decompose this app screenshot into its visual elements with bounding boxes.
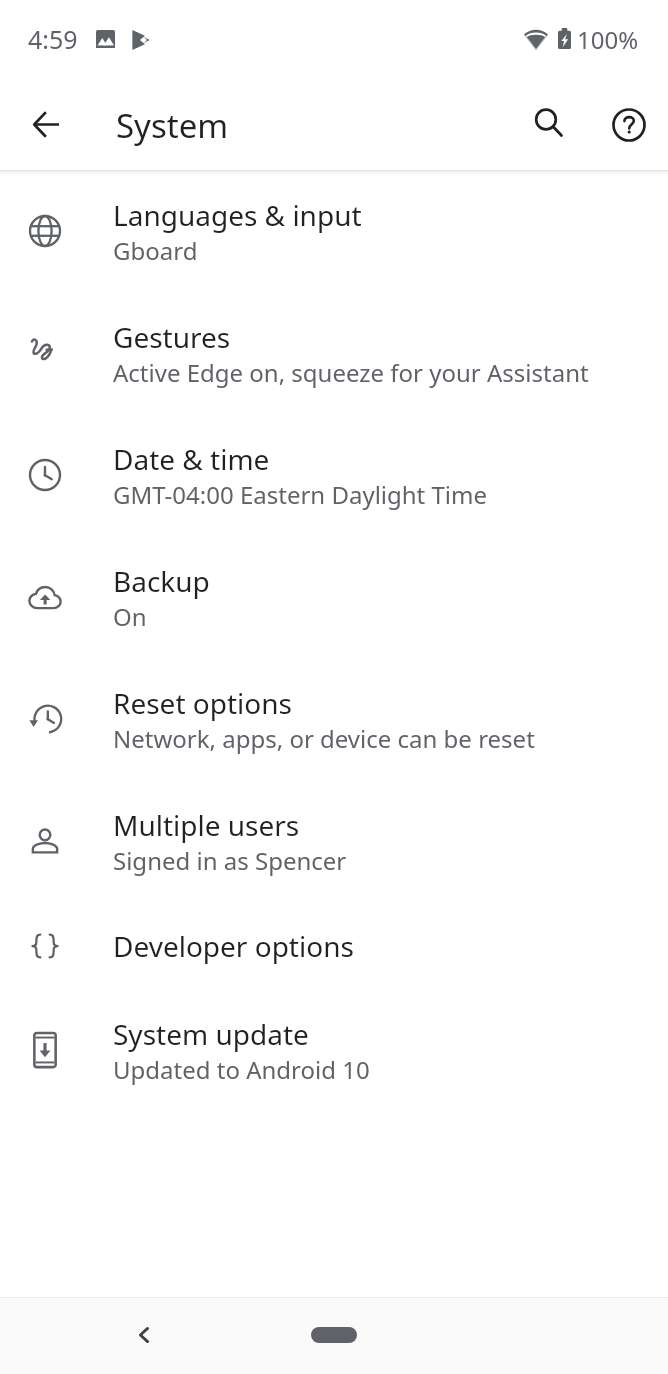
- staticText: 4:59: [28, 22, 78, 56]
- staticText: Date & time: [113, 440, 270, 478]
- staticText: System: [116, 103, 229, 148]
- button[interactable]: Back: [21, 100, 70, 149]
- staticText: 100%: [577, 23, 639, 56]
- staticText: Developer options: [113, 927, 354, 965]
- button[interactable]: Developer options: [0, 902, 668, 989]
- staticText: Gestures: [113, 318, 231, 356]
- staticText: Backup: [113, 562, 210, 600]
- button[interactable]: Languages & input: [0, 170, 668, 292]
- button[interactable]: Gestures: [0, 292, 668, 414]
- staticText: Languages & input: [113, 196, 362, 234]
- staticText: Signed in as Spencer: [113, 844, 347, 877]
- staticText: On: [113, 600, 147, 633]
- button[interactable]: System update: [0, 989, 668, 1111]
- button[interactable]: Help: [604, 100, 653, 149]
- staticText: GMT-04:00 Eastern Daylight Time: [113, 478, 488, 511]
- staticText: Active Edge on, squeeze for your Assista…: [113, 356, 589, 389]
- staticText: Updated to Android 10: [113, 1053, 370, 1086]
- staticText: Multiple users: [113, 806, 300, 844]
- button[interactable]: Multiple users: [0, 780, 668, 902]
- button[interactable]: Home: [311, 1327, 357, 1343]
- staticText: Network, apps, or device can be reset: [113, 722, 535, 755]
- staticText: Reset options: [113, 684, 292, 722]
- button[interactable]: Date & time: [0, 414, 668, 536]
- button[interactable]: Search: [526, 100, 575, 149]
- staticText: System update: [113, 1015, 309, 1053]
- button[interactable]: Reset options: [0, 658, 668, 780]
- staticText: Gboard: [113, 234, 198, 267]
- button[interactable]: Back: [120, 1311, 168, 1359]
- button[interactable]: Backup: [0, 536, 668, 658]
